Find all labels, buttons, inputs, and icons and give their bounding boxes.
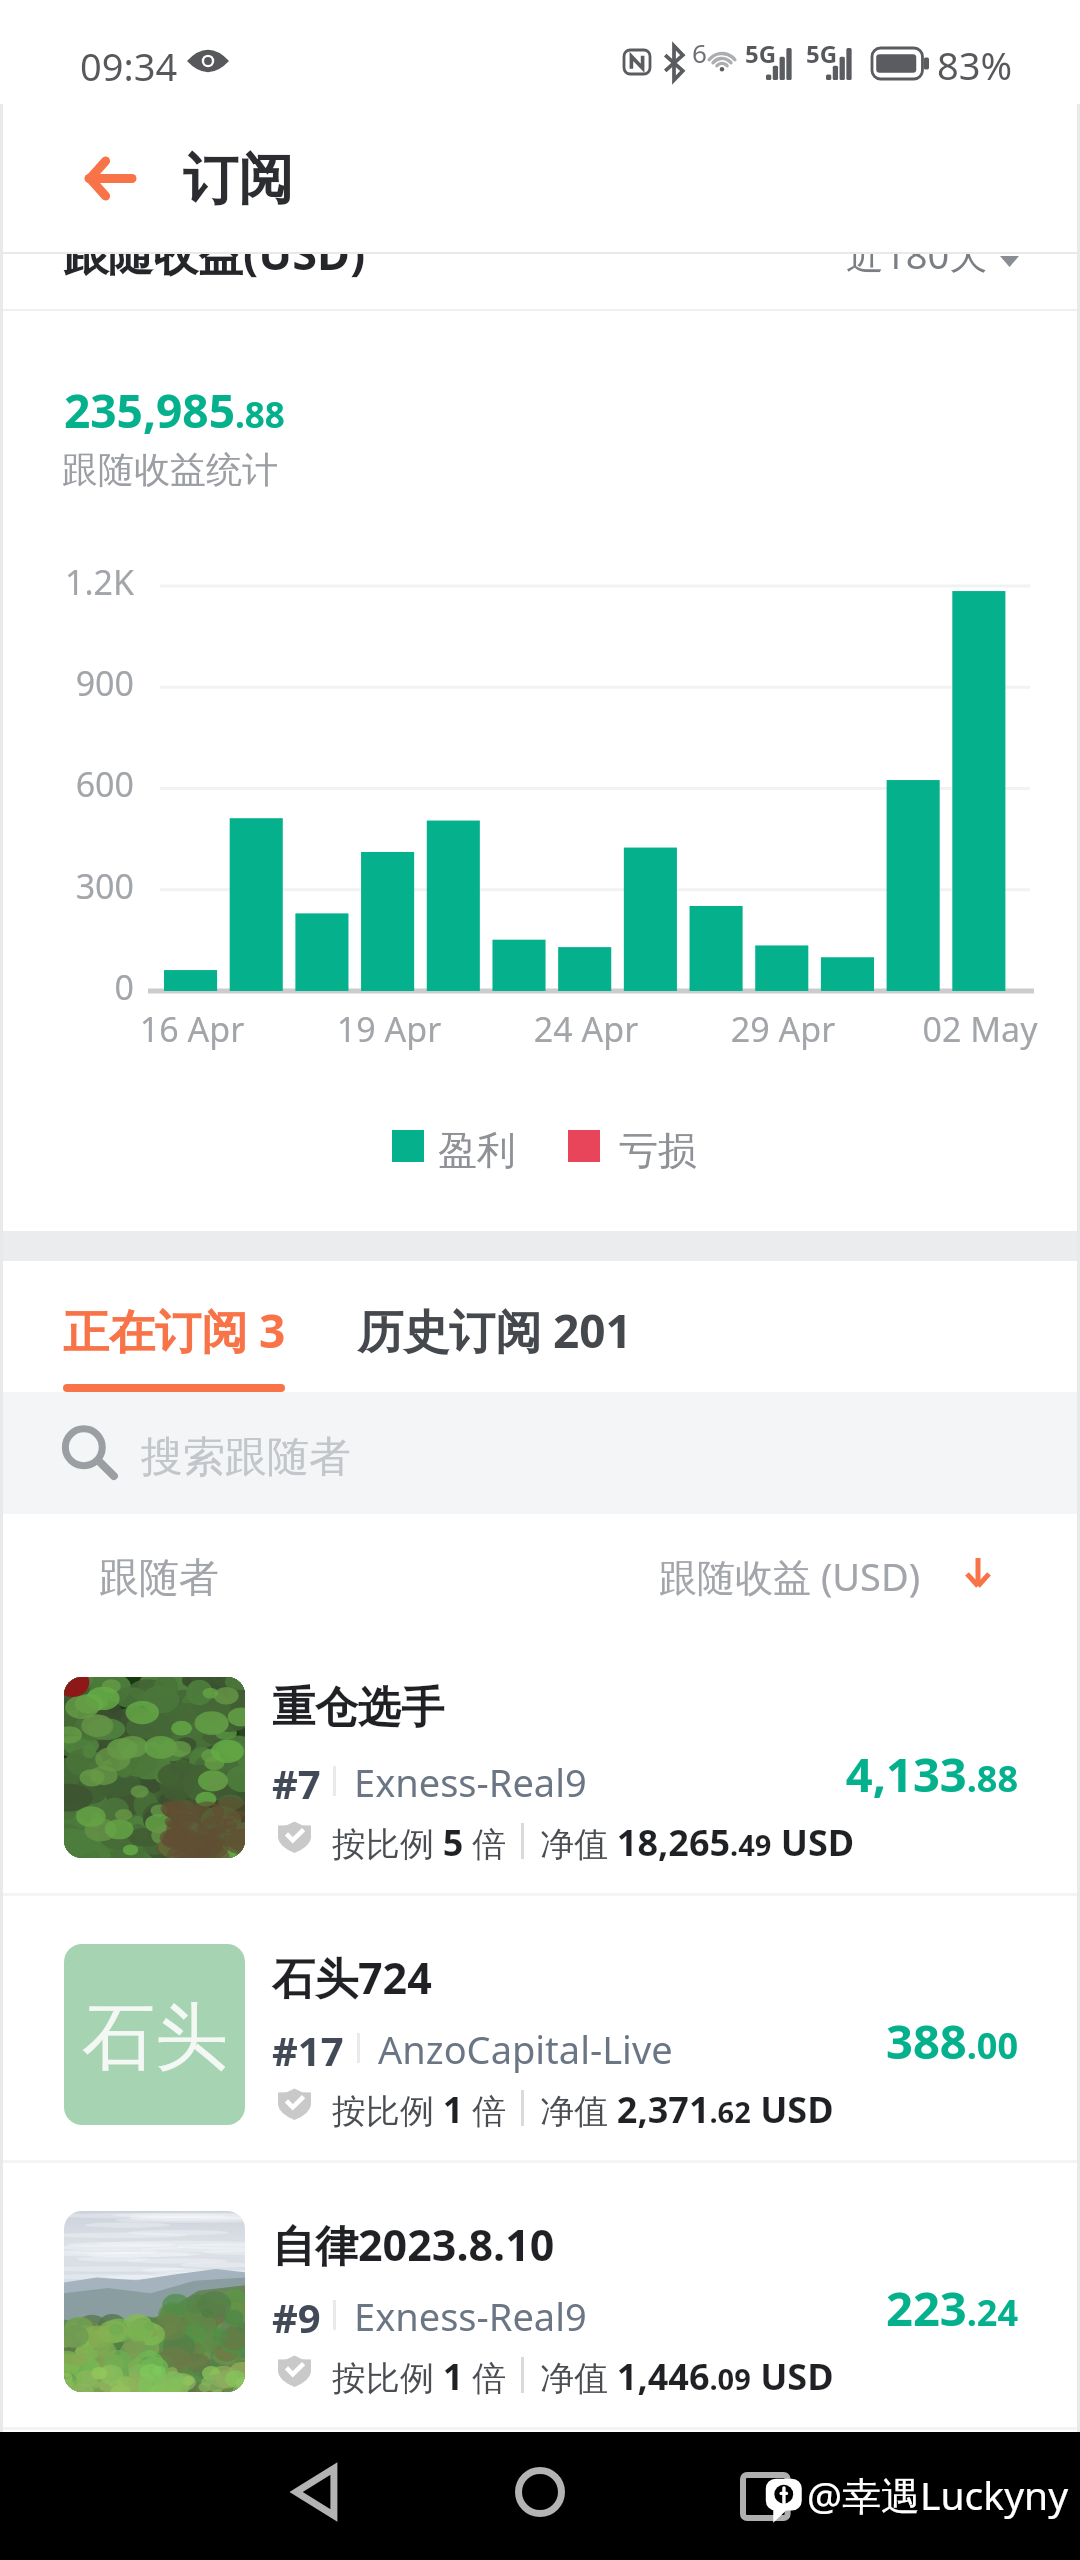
staticText: 历史订阅 201 — [357, 1299, 629, 1362]
staticText: Exness-Real9 — [354, 1756, 587, 1808]
staticText: 29 Apr — [673, 1006, 893, 1052]
staticText: 按比例 5 倍 — [332, 1818, 507, 1867]
staticText: 388.00 — [616, 2009, 1018, 2073]
staticText: 1.2K — [0, 559, 134, 605]
button[interactable]: Back — [275, 2452, 355, 2532]
staticText: 净值 1,446.09 USD — [540, 2352, 834, 2401]
button[interactable]: 正在订阅 3 — [63, 1261, 291, 1392]
button[interactable]: Sort by profit descending — [942, 1530, 1014, 1614]
staticText: 净值 18,265.49 USD — [540, 1818, 855, 1867]
staticText: 按比例 1 倍 — [332, 2085, 507, 2134]
staticText: 亏损 — [619, 1126, 697, 1175]
staticText: 订阅 — [183, 145, 293, 214]
staticText: 正在订阅 3 — [63, 1299, 286, 1362]
staticText: 重仓选手 — [272, 1681, 444, 1735]
staticText: 5G — [745, 37, 777, 70]
button[interactable]: 近180天 — [836, 214, 1026, 298]
staticText: 净值 2,371.62 USD — [540, 2085, 834, 2134]
button[interactable]: 石头 — [0, 1897, 1080, 2164]
staticText: 0 — [0, 964, 134, 1010]
staticText: #7 — [272, 1756, 321, 1810]
staticText: 300 — [0, 863, 134, 909]
staticText: 自律2023.8.10 — [272, 2215, 555, 2274]
button[interactable]: 自律2023.8.10 — [0, 2164, 1080, 2431]
staticText: 24 Apr — [476, 1006, 696, 1052]
staticText: #17 — [272, 2023, 344, 2077]
staticText: 石头 — [82, 1992, 228, 2084]
staticText: 02 May — [870, 1006, 1080, 1052]
staticText: 盈利 — [438, 1126, 516, 1175]
staticText: 跟随者 — [99, 1552, 219, 1602]
staticText: 19 Apr — [279, 1006, 499, 1052]
staticText: 石头724 — [272, 1948, 432, 2007]
staticText: 900 — [0, 660, 134, 706]
staticText: AnzoCapital-Live — [378, 2023, 673, 2075]
staticText: 跟随收益统计 — [62, 447, 278, 492]
staticText: 235,985.88 — [64, 379, 285, 442]
staticText: 223.24 — [616, 2276, 1018, 2340]
button[interactable]: Back — [60, 134, 158, 222]
button[interactable]: 历史订阅 201 — [357, 1261, 629, 1392]
staticText: #9 — [272, 2290, 321, 2344]
staticText: 600 — [0, 761, 134, 807]
staticText: Exness-Real9 — [354, 2290, 587, 2342]
staticText: 搜索跟随者 — [141, 1431, 351, 1484]
button[interactable]: Home — [500, 2452, 580, 2532]
staticText: 09:34 — [80, 40, 178, 92]
staticText: 跟随收益(USD) — [63, 222, 366, 283]
staticText: 5G — [806, 37, 838, 70]
staticText: 按比例 1 倍 — [332, 2352, 507, 2401]
staticText: 跟随收益 (USD) — [659, 1550, 921, 1602]
button[interactable]: 搜索跟随者 — [0, 1392, 1080, 1514]
staticText: 4,133.88 — [616, 1742, 1018, 1806]
staticText: 近180天 — [846, 228, 988, 280]
staticText: @幸遇Luckyny — [807, 2468, 1069, 2521]
staticText: 6 — [692, 35, 707, 70]
staticText: 16 Apr — [82, 1006, 302, 1052]
button[interactable]: 重仓选手 — [0, 1630, 1080, 1897]
staticText: 83% — [937, 39, 1013, 91]
